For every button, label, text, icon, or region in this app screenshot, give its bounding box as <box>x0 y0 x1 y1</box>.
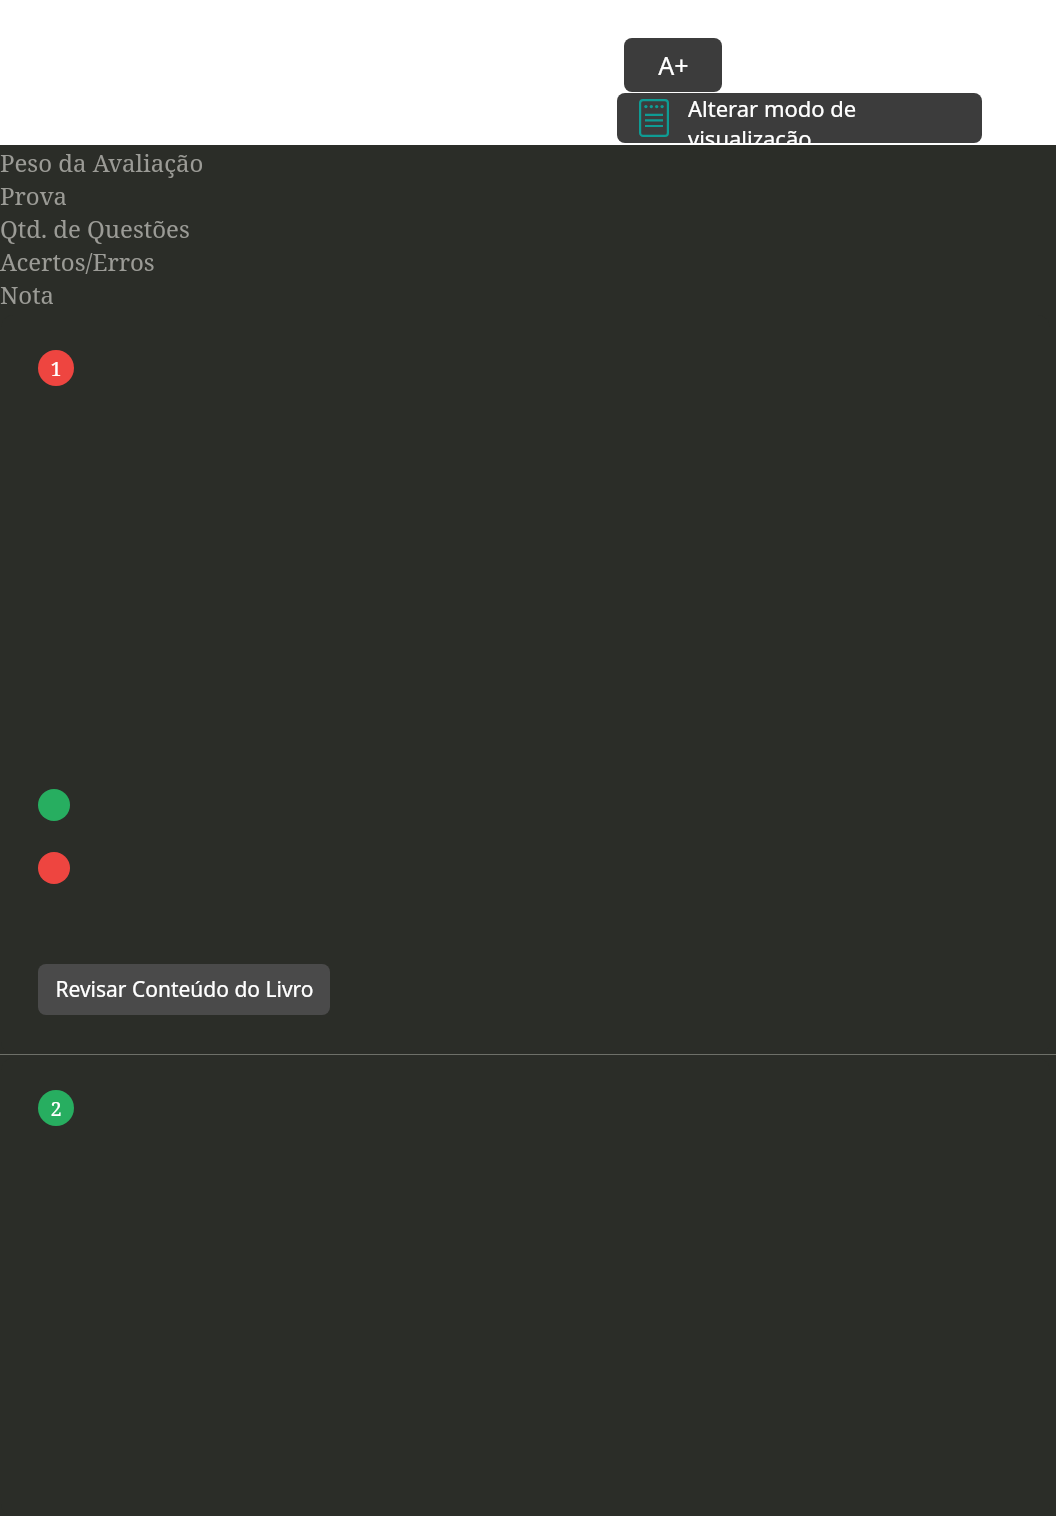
staticText: 1 <box>50 355 62 382</box>
staticText: Qtd. de Questões <box>0 212 1056 245</box>
staticText: Nota <box>0 278 1056 311</box>
staticText: Revisar Conteúdo do Livro <box>55 975 314 1004</box>
staticText: Acertos/Erros <box>0 245 1056 278</box>
staticText: Prova <box>0 179 1056 212</box>
button[interactable]: 1 <box>1 315 1050 1054</box>
other: Alterar modo de visualização <box>639 99 669 137</box>
staticText: 2 <box>50 1095 62 1122</box>
button[interactable]: Revisar Conteúdo do Livro <box>38 964 330 1015</box>
staticText: Peso da Avaliação <box>0 146 1056 179</box>
button[interactable]: A+ <box>624 38 722 92</box>
staticText: A+ <box>658 48 689 82</box>
button[interactable]: Alterar modo de visualização <box>617 93 982 143</box>
staticText: Alterar modo de visualização <box>688 93 982 143</box>
button[interactable]: 2 <box>1 1058 1050 1516</box>
